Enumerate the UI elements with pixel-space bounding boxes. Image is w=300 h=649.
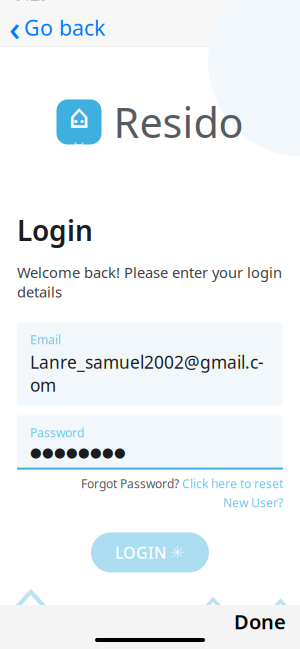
staticText: ⌂ <box>264 582 296 640</box>
staticText: Lanre_samuel2002@gmail.com <box>30 350 264 396</box>
staticText: Welcome back! Please enter your login de… <box>17 263 282 302</box>
staticText: ⌂ <box>68 98 89 135</box>
staticText: ●●●●●●●● <box>30 444 126 460</box>
staticText: ✳ <box>170 543 185 562</box>
staticText: ⌂ <box>196 580 230 640</box>
staticText: Go back <box>24 13 105 42</box>
staticText: LOGIN <box>115 542 166 563</box>
staticText: Click here to reset <box>182 476 283 491</box>
staticText: ‿ <box>74 125 84 146</box>
button[interactable]: Done <box>220 602 300 641</box>
staticText: Password <box>30 424 84 440</box>
staticText: ⌂ <box>11 569 50 639</box>
staticText: Done <box>234 608 286 635</box>
staticText: Forgot Password? <box>81 476 179 491</box>
button[interactable]: New User? <box>223 494 283 510</box>
button[interactable]: ‹ <box>0 8 115 46</box>
staticText: 9:29 <box>15 0 50 5</box>
staticText: Resido <box>113 94 243 149</box>
staticText: New User? <box>223 494 283 510</box>
staticText: Email <box>30 332 61 347</box>
staticText: ‹ <box>9 4 20 50</box>
button[interactable]: Forgot Password? <box>81 476 283 491</box>
staticText: Login <box>17 211 93 249</box>
button[interactable]: LOGIN <box>91 532 209 572</box>
